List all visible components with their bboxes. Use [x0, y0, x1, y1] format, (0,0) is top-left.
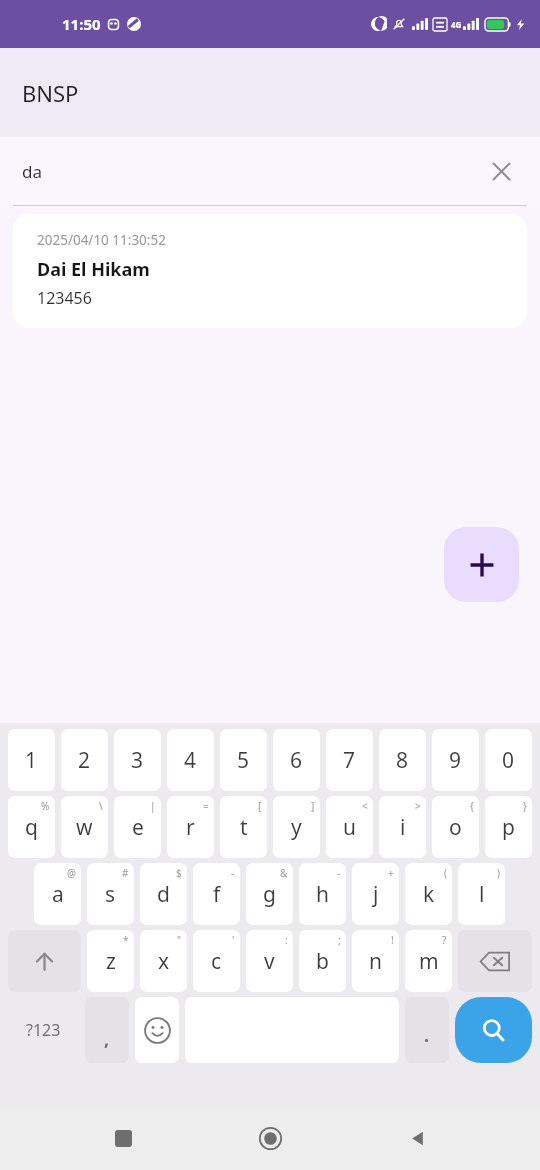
button[interactable]: x: [140, 930, 187, 992]
button[interactable]: Recents: [99, 1114, 147, 1162]
button[interactable]: Emoji: [135, 997, 179, 1063]
staticText: v: [264, 947, 275, 976]
staticText: {: [470, 799, 474, 813]
button[interactable]: Comma: [85, 997, 129, 1063]
staticText: ;: [338, 933, 341, 947]
button[interactable]: Add: [444, 527, 519, 602]
staticText: x: [158, 947, 170, 976]
button[interactable]: g: [246, 863, 293, 925]
staticText: da: [22, 160, 42, 183]
staticText: 2: [78, 746, 91, 775]
button[interactable]: v: [246, 930, 293, 992]
button[interactable]: n: [352, 930, 399, 992]
button[interactable]: Backspace: [458, 930, 532, 992]
button[interactable]: i: [379, 796, 426, 858]
staticText: &: [280, 866, 288, 880]
staticText: >: [415, 799, 421, 813]
staticText: c: [211, 947, 222, 976]
staticText: =: [203, 799, 209, 813]
button[interactable]: u: [326, 796, 373, 858]
button[interactable]: d: [140, 863, 187, 925]
button[interactable]: y: [273, 796, 320, 858]
button[interactable]: ?123: [8, 997, 79, 1063]
button[interactable]: 3: [114, 729, 161, 791]
button[interactable]: Search: [455, 997, 532, 1063]
button[interactable]: o: [432, 796, 479, 858]
button[interactable]: Home: [246, 1114, 294, 1162]
button[interactable]: 2: [61, 729, 108, 791]
staticText: o: [449, 813, 462, 842]
staticText: p: [502, 813, 515, 842]
staticText: -: [231, 866, 235, 880]
button[interactable]: q: [8, 796, 55, 858]
staticText: g: [263, 880, 276, 909]
staticText: !: [391, 933, 394, 947]
button[interactable]: 7: [326, 729, 373, 791]
staticText: 3: [131, 746, 144, 775]
button[interactable]: Clear search: [484, 154, 518, 188]
button[interactable]: e: [114, 796, 161, 858]
button[interactable]: l: [458, 863, 505, 925]
button[interactable]: h: [299, 863, 346, 925]
button[interactable]: Period: [405, 997, 449, 1063]
staticText: 6: [290, 746, 303, 775]
staticText: <: [362, 799, 368, 813]
staticText: :: [285, 933, 288, 947]
staticText: Dai El Hikam: [37, 257, 150, 282]
staticText: n: [369, 947, 382, 976]
staticText: %: [41, 799, 50, 813]
staticText: 7: [343, 746, 356, 775]
staticText: ): [497, 866, 500, 880]
button[interactable]: 8: [379, 729, 426, 791]
staticText: r: [186, 813, 195, 842]
staticText: *: [123, 933, 129, 947]
button[interactable]: j: [352, 863, 399, 925]
staticText: $: [176, 866, 182, 880]
staticText: 0: [502, 746, 515, 775]
button[interactable]: 6: [273, 729, 320, 791]
button[interactable]: 0: [485, 729, 532, 791]
button[interactable]: 5: [220, 729, 267, 791]
staticText: z: [106, 947, 116, 976]
staticText: 9: [449, 746, 462, 775]
staticText: y: [291, 813, 302, 842]
button[interactable]: m: [405, 930, 452, 992]
staticText: e: [132, 813, 144, 842]
staticText: 4: [184, 746, 197, 775]
staticText: d: [157, 880, 170, 909]
button[interactable]: k: [405, 863, 452, 925]
staticText: -: [337, 866, 341, 880]
staticText: |: [150, 799, 156, 813]
staticText: m: [419, 947, 439, 976]
button[interactable]: p: [485, 796, 532, 858]
staticText: 123456: [37, 287, 92, 309]
button[interactable]: r: [167, 796, 214, 858]
staticText: 4G: [451, 19, 462, 30]
staticText: (: [444, 866, 447, 880]
staticText: f: [213, 880, 221, 909]
staticText: 11:50: [62, 14, 101, 34]
staticText: \: [99, 799, 103, 813]
staticText: u: [343, 813, 356, 842]
staticText: +: [388, 866, 394, 880]
button[interactable]: Back: [393, 1114, 441, 1162]
button[interactable]: 2025/04/10 11:30:52: [13, 214, 527, 328]
staticText: a: [52, 880, 64, 909]
button[interactable]: 9: [432, 729, 479, 791]
staticText: }: [523, 799, 527, 813]
button[interactable]: w: [61, 796, 108, 858]
button[interactable]: t: [220, 796, 267, 858]
button[interactable]: f: [193, 863, 240, 925]
button[interactable]: 1: [8, 729, 55, 791]
button[interactable]: c: [193, 930, 240, 992]
staticText: h: [316, 880, 329, 909]
button[interactable]: 4: [167, 729, 214, 791]
button[interactable]: b: [299, 930, 346, 992]
button[interactable]: a: [34, 863, 81, 925]
button[interactable]: z: [87, 930, 134, 992]
button[interactable]: s: [87, 863, 134, 925]
staticText: 1: [25, 746, 38, 775]
staticText: q: [25, 813, 38, 842]
button[interactable]: Shift: [8, 930, 81, 992]
